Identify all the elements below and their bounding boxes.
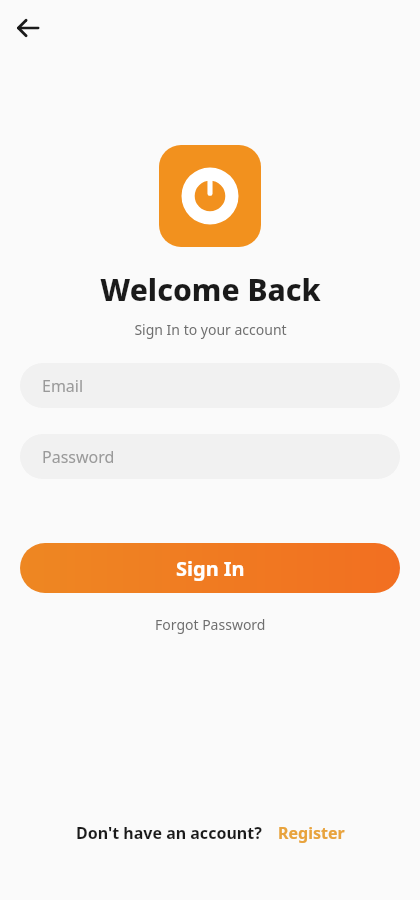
button[interactable]: Password [20, 434, 400, 479]
button[interactable]: Sign In [20, 543, 400, 593]
button[interactable]: Back [6, 6, 50, 50]
staticText: Welcome Back [100, 269, 321, 310]
staticText: Register [278, 822, 345, 844]
button[interactable]: Email [20, 363, 400, 408]
button[interactable]: Register [278, 822, 345, 844]
staticText: Email [42, 375, 84, 397]
staticText: Don't have an account? [76, 822, 262, 844]
button[interactable]: Forgot Password [143, 609, 278, 640]
staticText: Sign In to your account [134, 320, 287, 339]
staticText: Sign In [176, 555, 245, 582]
staticText: Password [42, 446, 115, 468]
staticText: Forgot Password [155, 615, 266, 634]
